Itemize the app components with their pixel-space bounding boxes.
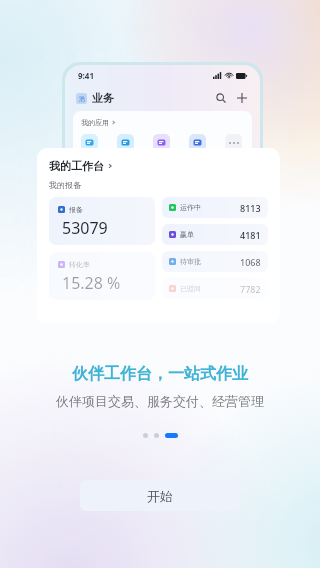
staticText: 浩 [79, 95, 85, 103]
button[interactable]: App [189, 134, 206, 151]
button[interactable]: App [81, 134, 98, 151]
button[interactable]: Add [235, 91, 249, 105]
button[interactable]: 待审批 [162, 251, 268, 272]
button[interactable]: 转化率 [49, 252, 155, 300]
staticText: 我的工作台 [49, 159, 104, 173]
staticText: 伙伴项目交易、服务交付、经营管理 [56, 393, 264, 409]
button[interactable]: App [117, 134, 134, 151]
button[interactable]: 我的工作台 [49, 159, 113, 173]
staticText: 我的应用 [81, 118, 109, 127]
staticText: 业务 [92, 91, 114, 105]
staticText: 待审批 [180, 257, 201, 266]
staticText: 8113 [240, 202, 261, 214]
staticText: 开始 [147, 488, 173, 504]
staticText: 1068 [240, 256, 261, 268]
staticText: 已驳回 [180, 284, 201, 293]
staticText: 9:41 [78, 70, 94, 81]
staticText: 15.28 % [62, 272, 121, 294]
button[interactable]: 运作中 [162, 197, 268, 218]
button[interactable]: 报备 [49, 197, 155, 245]
staticText: 7782 [240, 283, 261, 295]
button[interactable]: 开始 [80, 480, 240, 511]
staticText: 伙伴工作台，一站式作业 [72, 364, 248, 384]
button[interactable]: 赢单 [162, 224, 268, 245]
staticText: 4181 [240, 229, 261, 241]
staticText: 转化率 [69, 260, 90, 269]
button[interactable]: Search [214, 91, 228, 105]
button[interactable]: 已驳回 [162, 278, 268, 299]
staticText: 赢单 [180, 230, 194, 239]
staticText: 我的报备 [49, 180, 81, 190]
staticText: 53079 [62, 217, 108, 239]
staticText: 报备 [69, 205, 83, 214]
button[interactable]: App [153, 134, 170, 151]
button[interactable]: More apps [225, 134, 242, 151]
staticText: 运作中 [180, 203, 201, 212]
